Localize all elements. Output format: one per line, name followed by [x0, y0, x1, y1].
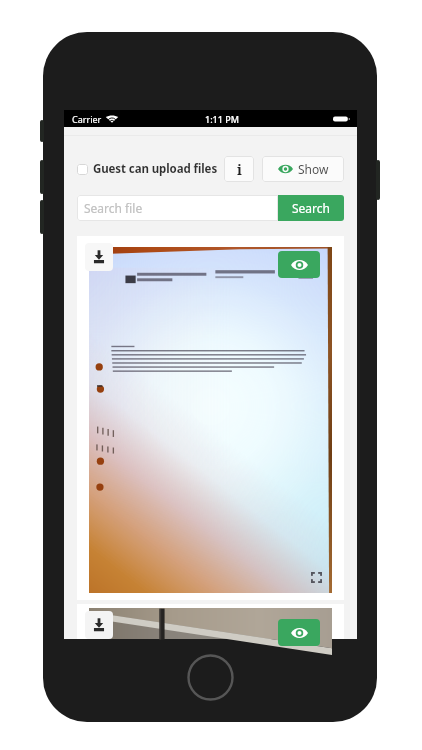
staticText: 1:11 PM — [205, 113, 239, 125]
staticText: i — [237, 160, 242, 179]
button[interactable]: Search — [278, 195, 344, 221]
staticText: Carrier — [72, 113, 102, 125]
button[interactable]: Download — [77, 236, 344, 600]
staticText: Search — [292, 200, 330, 216]
button[interactable]: Info — [224, 156, 254, 182]
staticText: Show — [298, 161, 329, 177]
button[interactable]: Download — [85, 243, 113, 271]
button[interactable]: Guest can upload files — [77, 161, 218, 177]
staticText: Guest can upload files — [93, 161, 218, 177]
button[interactable]: Show — [262, 156, 344, 182]
button[interactable]: Search file — [77, 195, 278, 221]
button[interactable]: View — [278, 251, 320, 278]
button[interactable]: Download file 2 — [77, 604, 344, 639]
button[interactable]: View file 2 — [278, 619, 320, 646]
staticText: Search file — [84, 200, 143, 216]
button[interactable]: Download file 2 — [85, 611, 113, 639]
